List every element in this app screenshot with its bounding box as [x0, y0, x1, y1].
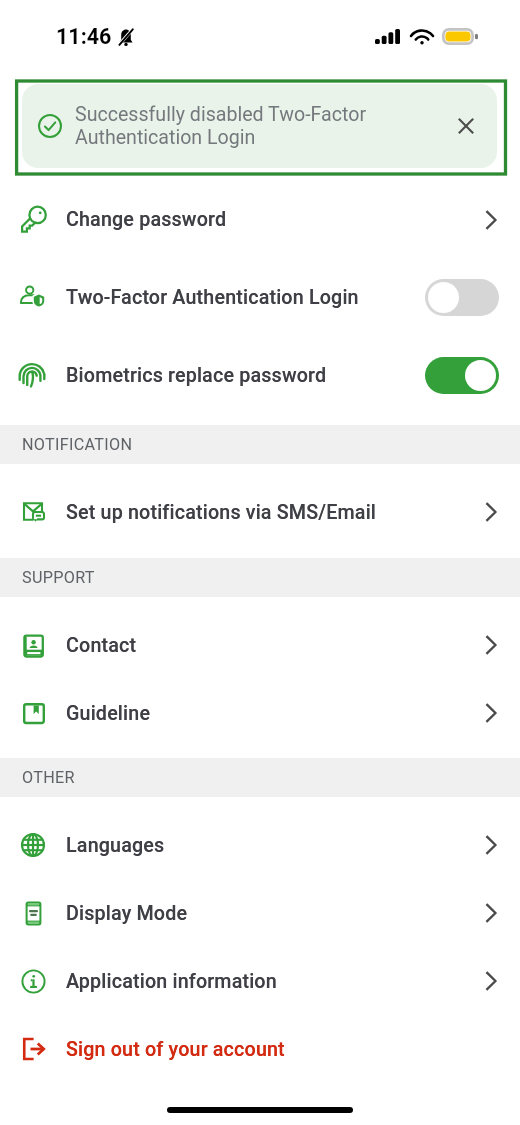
button[interactable]: Languages	[0, 811, 520, 879]
other: Open	[485, 968, 499, 994]
staticText: Display Mode	[66, 902, 188, 925]
staticText: Change password	[66, 208, 227, 231]
button[interactable]: Application information	[0, 947, 520, 1015]
staticText: Sign out of your account	[66, 1038, 285, 1061]
staticText: Change password	[66, 208, 227, 231]
staticText: 11:46	[56, 24, 112, 49]
other: Open	[485, 700, 499, 726]
staticText: Languages	[66, 834, 165, 857]
staticText: Two-Factor Authentication Login	[66, 286, 359, 309]
staticText: Application information	[66, 970, 277, 993]
button[interactable]: Change password	[0, 181, 520, 258]
staticText: NOTIFICATION	[22, 435, 133, 454]
button[interactable]: Toggle off	[425, 279, 499, 316]
staticText: Guideline	[66, 702, 151, 725]
button[interactable]: Sign out of your account	[0, 1015, 520, 1083]
staticText: Biometrics replace password	[66, 364, 327, 387]
other: Open	[485, 207, 499, 233]
button[interactable]: Biometrics replace password	[0, 336, 520, 415]
staticText: Display Mode	[66, 902, 188, 925]
button[interactable]: Set up notifications via SMS/Email	[0, 478, 520, 546]
button[interactable]: Display Mode	[0, 879, 520, 947]
button[interactable]: Guideline	[0, 679, 520, 747]
other: Open	[485, 832, 499, 858]
staticText: Sign out of your account	[66, 1038, 285, 1061]
staticText: OTHER	[22, 768, 75, 787]
staticText: SUPPORT	[22, 568, 95, 587]
staticText: Two-Factor Authentication Login	[66, 286, 359, 309]
other: Open	[485, 499, 499, 525]
button[interactable]: Two-Factor Authentication Login	[0, 258, 520, 336]
staticText: Languages	[66, 834, 165, 857]
other: Open	[485, 632, 499, 658]
staticText: Set up notifications via SMS/Email	[66, 501, 377, 524]
button[interactable]: Contact	[0, 611, 520, 679]
button[interactable]: Dismiss	[452, 112, 480, 140]
staticText: Set up notifications via SMS/Email	[66, 501, 377, 524]
staticText: Contact	[66, 634, 137, 657]
staticText: Application information	[66, 970, 277, 993]
button[interactable]: Successfully disabled Two-Factor Authent…	[22, 84, 497, 168]
button[interactable]: Toggle on	[425, 357, 499, 394]
staticText: Biometrics replace password	[66, 364, 327, 387]
other: Open	[485, 900, 499, 926]
staticText: Contact	[66, 634, 137, 657]
staticText: Successfully disabled Two-Factor Authent…	[75, 103, 367, 149]
staticText: Guideline	[66, 702, 151, 725]
